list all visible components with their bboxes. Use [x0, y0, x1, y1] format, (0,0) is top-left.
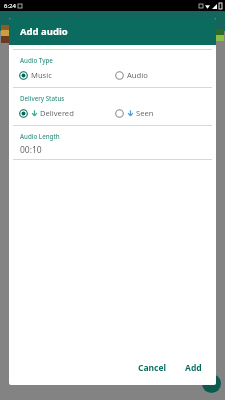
- staticText: Delivery Status: [20, 94, 65, 102]
- staticText: Audio: [127, 70, 148, 80]
- button[interactable]: Delivered: [19, 106, 115, 120]
- staticText: Music: [31, 70, 52, 80]
- button[interactable]: Seen: [115, 106, 205, 120]
- staticText: Audio Length: [20, 132, 60, 140]
- staticText: Audio Type: [20, 56, 53, 64]
- button[interactable]: Audio: [115, 68, 205, 82]
- staticText: 00:10: [20, 144, 42, 156]
- button[interactable]: Cancel: [132, 358, 173, 378]
- staticText: Add audio: [20, 25, 68, 38]
- staticText: 6:24: [4, 2, 16, 10]
- staticText: Cancel: [138, 362, 167, 374]
- button[interactable]: New item: [202, 374, 221, 393]
- button[interactable]: Add: [179, 358, 208, 378]
- staticText: Add: [185, 362, 202, 374]
- button[interactable]: 00:10: [9, 144, 216, 159]
- button[interactable]: Music: [19, 68, 115, 82]
- staticText: Delivered: [40, 108, 74, 118]
- staticText: Seen: [136, 108, 154, 118]
